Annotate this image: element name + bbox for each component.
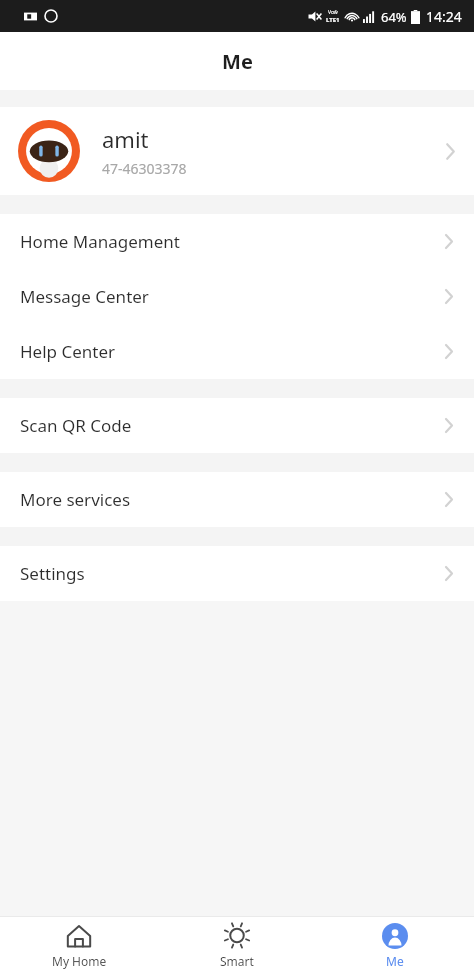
staticText: Scan QR Code — [20, 414, 132, 437]
staticText: Voŵ — [328, 9, 338, 16]
staticText: amit — [102, 124, 149, 154]
staticText: Message Center — [20, 285, 149, 308]
staticText: 14:24 — [426, 7, 462, 26]
staticText: Smart — [220, 953, 254, 969]
button[interactable]: amit — [0, 107, 474, 195]
button[interactable]: Scan QR Code — [0, 398, 474, 453]
staticText: Settings — [20, 562, 85, 585]
button[interactable]: Me — [316, 923, 474, 969]
staticText: More services — [20, 488, 131, 511]
staticText: My Home — [52, 953, 107, 969]
staticText: LTE1 — [326, 16, 340, 24]
staticText: Help Center — [20, 340, 116, 363]
button[interactable]: Smart — [158, 923, 316, 969]
staticText: 64% — [381, 8, 407, 26]
button[interactable]: More services — [0, 472, 474, 527]
staticText: Home Management — [20, 230, 180, 253]
button[interactable]: My Home — [0, 923, 158, 969]
button[interactable]: Settings — [0, 546, 474, 601]
staticText: Me — [222, 48, 253, 75]
button[interactable]: Help Center — [0, 324, 474, 379]
staticText: 47-46303378 — [102, 159, 187, 178]
staticText: Me — [386, 953, 404, 969]
button[interactable]: Home Management — [0, 214, 474, 269]
button[interactable]: Message Center — [0, 269, 474, 324]
